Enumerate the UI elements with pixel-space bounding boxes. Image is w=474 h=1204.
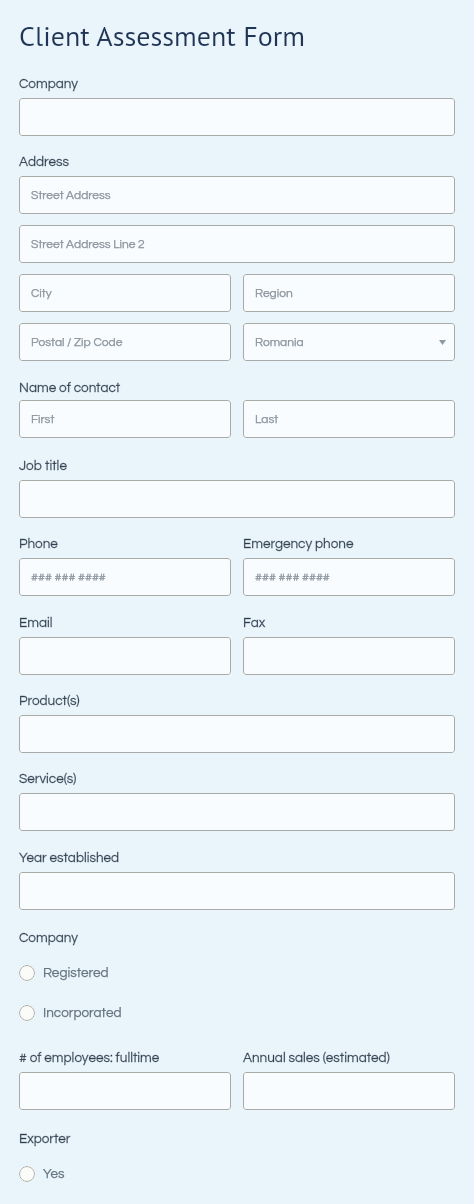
staticText: Email (19, 616, 53, 630)
staticText: Last (255, 413, 279, 425)
staticText: Postal / Zip Code (31, 336, 123, 348)
staticText: Name of contact (19, 381, 121, 395)
button[interactable]: Region (243, 274, 455, 312)
staticText: Emergency phone (243, 537, 354, 551)
staticText: Product(s) (19, 694, 80, 708)
staticText: Annual sales (estimated) (243, 1051, 390, 1065)
button[interactable]: Products (19, 715, 455, 753)
staticText: Region (255, 287, 293, 299)
staticText: Address (19, 155, 70, 169)
staticText: Yes (43, 1167, 65, 1181)
staticText: ### ### #### (31, 571, 106, 583)
staticText: City (31, 287, 52, 299)
staticText: Exporter (19, 1132, 71, 1146)
staticText: Year established (19, 851, 120, 865)
staticText: Last (255, 413, 279, 425)
staticText: Postal / Zip Code (31, 336, 123, 348)
staticText: Romania (255, 336, 304, 348)
staticText: Company (19, 931, 78, 945)
staticText: Job title (19, 459, 67, 473)
button[interactable]: Company (19, 98, 455, 136)
staticText: First (31, 413, 55, 425)
staticText: Company (19, 931, 78, 945)
staticText: Job title (19, 459, 67, 473)
staticText: Street Address Line 2 (31, 238, 145, 250)
staticText: Phone (19, 537, 58, 551)
button[interactable]: City (19, 274, 231, 312)
staticText: Year established (19, 851, 120, 865)
button[interactable]: Number of employees fulltime (19, 1072, 231, 1110)
button[interactable]: Services (19, 793, 455, 831)
staticText: Emergency phone (243, 537, 354, 551)
button[interactable]: Incorporated (19, 1001, 455, 1025)
staticText: Product(s) (19, 694, 80, 708)
staticText: Address (19, 155, 70, 169)
button[interactable]: Street Address Line 2 (19, 225, 455, 263)
staticText: ### ### #### (255, 571, 330, 583)
button[interactable]: ### ### #### (19, 558, 231, 596)
button[interactable]: Fax (243, 637, 455, 675)
staticText: Incorporated (43, 1006, 122, 1020)
button[interactable]: Job title (19, 480, 455, 518)
staticText: Incorporated (43, 1006, 122, 1020)
staticText: Registered (43, 966, 109, 980)
staticText: Romania (255, 336, 304, 348)
staticText: Street Address (31, 189, 111, 201)
staticText: Street Address (31, 189, 111, 201)
button[interactable]: Yes (19, 1162, 455, 1186)
staticText: Fax (243, 616, 266, 630)
staticText: Yes (43, 1167, 65, 1181)
button[interactable]: ### ### #### (243, 558, 455, 596)
button[interactable]: Postal / Zip Code (19, 323, 231, 361)
staticText: Registered (43, 966, 109, 980)
staticText: ### ### #### (255, 571, 330, 583)
button[interactable]: Street Address (19, 176, 455, 214)
staticText: # of employees: fulltime (19, 1051, 160, 1065)
staticText: Annual sales (estimated) (243, 1051, 390, 1065)
button[interactable]: First (19, 400, 231, 438)
button[interactable]: Year established (19, 872, 455, 910)
staticText: Name of contact (19, 381, 121, 395)
staticText: City (31, 287, 52, 299)
staticText: Company (19, 77, 78, 91)
button[interactable]: Romania (243, 323, 455, 361)
staticText: Service(s) (19, 772, 77, 786)
staticText: Street Address Line 2 (31, 238, 145, 250)
button[interactable]: Annual sales estimated (243, 1072, 455, 1110)
staticText: ### ### #### (31, 571, 106, 583)
staticText: Service(s) (19, 772, 77, 786)
staticText: # of employees: fulltime (19, 1051, 160, 1065)
staticText: Company (19, 77, 78, 91)
staticText: Email (19, 616, 53, 630)
staticText: Region (255, 287, 293, 299)
staticText: Client Assessment Form (19, 17, 306, 53)
staticText: First (31, 413, 55, 425)
staticText: Phone (19, 537, 58, 551)
button[interactable]: Last (243, 400, 455, 438)
staticText: Fax (243, 616, 266, 630)
button[interactable]: Registered (19, 961, 455, 985)
button[interactable]: Email (19, 637, 231, 675)
staticText: Exporter (19, 1132, 71, 1146)
